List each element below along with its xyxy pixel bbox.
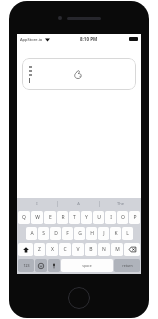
staticText: P — [133, 214, 137, 221]
button[interactable]: Home — [68, 287, 90, 309]
button[interactable]: Y — [81, 211, 92, 224]
button[interactable]: Dictation — [48, 259, 60, 272]
button[interactable]: H — [86, 227, 97, 240]
staticText: X — [51, 246, 54, 253]
button[interactable]: X — [46, 243, 58, 256]
button[interactable]: C — [59, 243, 71, 256]
staticText: C — [63, 246, 67, 253]
staticText: O — [121, 214, 125, 221]
staticText: K — [114, 230, 118, 237]
button[interactable]: A — [26, 227, 37, 240]
button[interactable]: space — [61, 259, 113, 272]
button[interactable]: Backspace — [124, 243, 140, 256]
button[interactable]: Q — [18, 211, 30, 224]
button[interactable]: B — [85, 243, 97, 256]
button[interactable]: Pointer — [22, 58, 136, 90]
button[interactable]: I — [105, 211, 116, 224]
staticText: The — [117, 201, 124, 206]
staticText: Q — [22, 214, 26, 221]
staticText: J — [103, 230, 105, 237]
button[interactable]: Shift — [18, 243, 33, 256]
button[interactable]: J — [98, 227, 109, 240]
staticText: M — [115, 246, 120, 253]
button[interactable]: Emoji — [35, 259, 47, 272]
staticText: A — [77, 201, 80, 206]
staticText: I — [36, 201, 38, 206]
button[interactable]: W — [31, 211, 43, 224]
staticText: H — [90, 230, 94, 237]
button[interactable]: R — [57, 211, 68, 224]
staticText: L — [126, 230, 129, 237]
staticText: Y — [85, 214, 88, 221]
staticText: G — [78, 230, 82, 237]
staticText: 123 — [23, 263, 30, 268]
button[interactable]: V — [72, 243, 84, 256]
staticText: I — [110, 214, 112, 221]
staticText: AppStore.io — [20, 37, 43, 42]
staticText: D — [54, 230, 58, 237]
button[interactable]: Z — [34, 243, 45, 256]
button[interactable]: D — [50, 227, 61, 240]
staticText: S — [42, 230, 45, 237]
staticText: return — [122, 263, 133, 268]
button[interactable]: O — [117, 211, 128, 224]
staticText: E — [49, 214, 52, 221]
button[interactable]: L — [122, 227, 133, 240]
staticText: R — [61, 214, 65, 221]
button[interactable]: M — [111, 243, 123, 256]
button[interactable]: N — [98, 243, 110, 256]
button[interactable]: U — [93, 211, 104, 224]
staticText: W — [35, 214, 40, 221]
button[interactable]: 123 — [18, 259, 34, 272]
button[interactable]: S — [38, 227, 49, 240]
button[interactable]: F — [62, 227, 73, 240]
button[interactable]: K — [110, 227, 121, 240]
staticText: 8:10 PM — [80, 36, 98, 42]
staticText: Z — [38, 246, 41, 253]
button[interactable]: T — [69, 211, 80, 224]
button[interactable]: return — [114, 259, 140, 272]
staticText: A — [30, 230, 34, 237]
staticText: V — [76, 246, 80, 253]
staticText: space — [82, 263, 92, 268]
button[interactable]: The — [100, 198, 141, 209]
staticText: U — [97, 214, 101, 221]
staticText: T — [73, 214, 76, 221]
button[interactable]: E — [44, 211, 56, 224]
staticText: F — [66, 230, 69, 237]
other: Pointer — [72, 69, 83, 80]
button[interactable]: P — [129, 211, 140, 224]
staticText: B — [89, 246, 93, 253]
staticText: N — [102, 246, 106, 253]
button[interactable]: A — [58, 198, 99, 209]
button[interactable]: G — [74, 227, 85, 240]
